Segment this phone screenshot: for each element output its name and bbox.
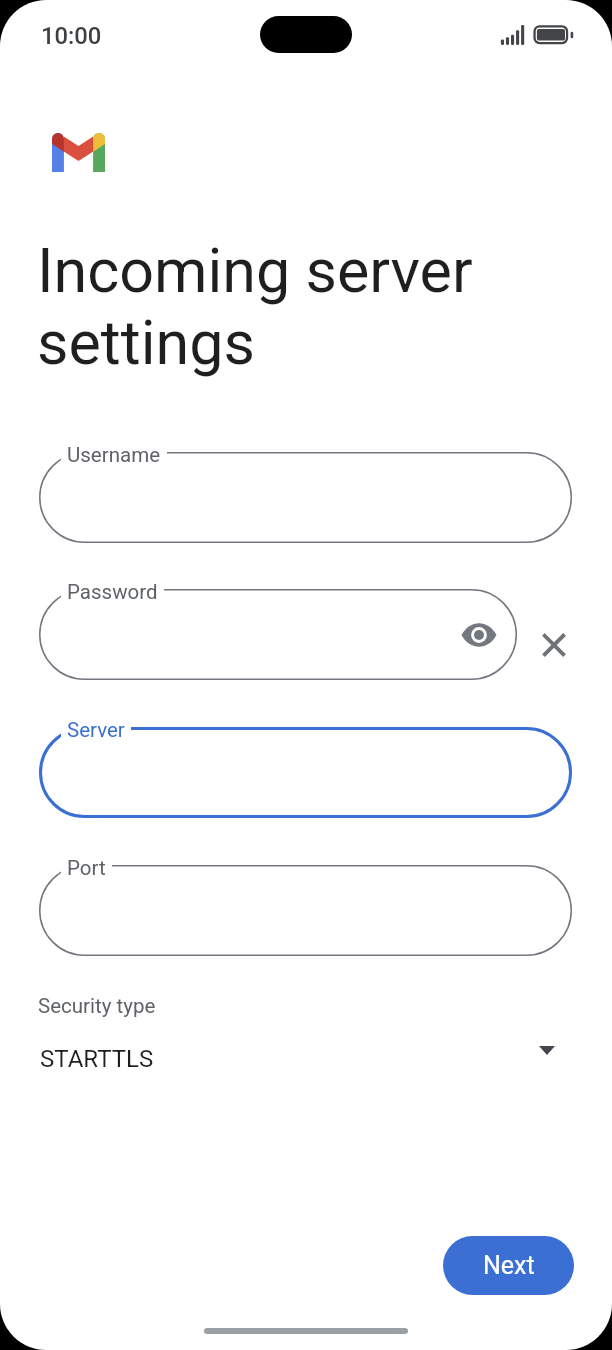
button[interactable]: Show password: [455, 611, 503, 659]
button[interactable]: [39, 589, 517, 680]
staticText: Username: [67, 443, 161, 467]
button[interactable]: [39, 452, 572, 543]
staticText: Port: [67, 856, 106, 880]
staticText: Next: [483, 1251, 535, 1280]
button[interactable]: Clear: [530, 621, 578, 669]
staticText: STARTTLS: [40, 1045, 154, 1073]
staticText: Password: [67, 580, 158, 604]
staticText: Server: [67, 718, 125, 742]
button[interactable]: [39, 727, 572, 818]
staticText: Security type: [38, 994, 156, 1018]
staticText: Incoming server settings: [37, 235, 473, 379]
button[interactable]: Next: [443, 1236, 574, 1295]
button[interactable]: [39, 865, 572, 956]
button[interactable]: Security type: [0, 985, 612, 1095]
staticText: 10:00: [41, 22, 102, 50]
